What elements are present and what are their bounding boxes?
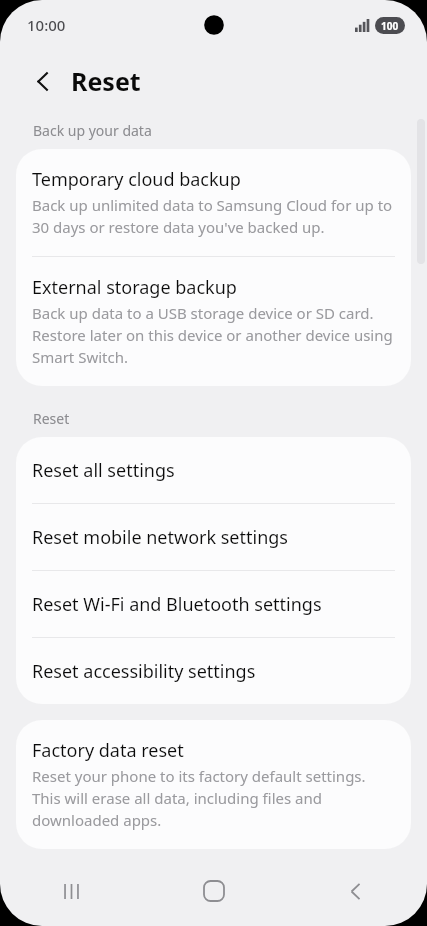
staticText: Back up your data: [33, 121, 152, 140]
button[interactable]: Home: [143, 856, 285, 926]
staticText: 10:00: [27, 15, 66, 35]
staticText: Reset all settings: [32, 458, 175, 483]
button[interactable]: Reset accessibility settings: [16, 638, 411, 704]
staticText: Reset: [33, 409, 70, 428]
button[interactable]: Reset all settings: [16, 437, 411, 503]
staticText: Back up unlimited data to Samsung Cloud …: [32, 195, 393, 238]
button[interactable]: Reset Wi-Fi and Bluetooth settings: [16, 571, 411, 637]
button[interactable]: Recents: [0, 856, 143, 926]
staticText: Reset your phone to its factory default …: [32, 766, 366, 831]
staticText: Reset: [71, 64, 141, 98]
staticText: Factory data reset: [32, 738, 184, 763]
staticText: 100: [381, 19, 399, 33]
staticText: External storage backup: [32, 275, 237, 300]
button[interactable]: Temporary cloud backup: [16, 149, 411, 256]
staticText: Reset accessibility settings: [32, 659, 256, 684]
staticText: Temporary cloud backup: [32, 167, 241, 192]
button[interactable]: Back: [285, 856, 427, 926]
button[interactable]: Back: [26, 64, 60, 98]
staticText: Reset mobile network settings: [32, 525, 288, 550]
staticText: Back up data to a USB storage device or …: [32, 303, 393, 368]
button[interactable]: External storage backup: [16, 257, 411, 386]
staticText: Reset Wi-Fi and Bluetooth settings: [32, 592, 322, 617]
button[interactable]: Reset mobile network settings: [16, 504, 411, 570]
button[interactable]: Factory data reset: [16, 720, 411, 849]
